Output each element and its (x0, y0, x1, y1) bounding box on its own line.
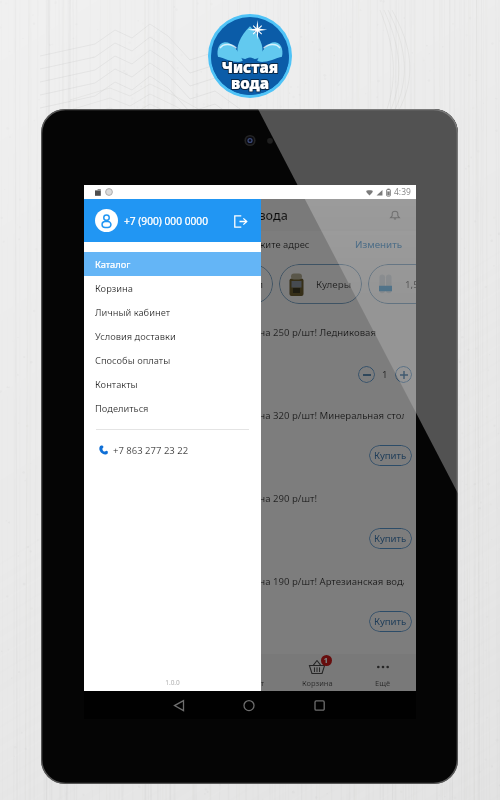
staticText: Кулеры (316, 278, 352, 291)
staticText: Личный кабинет (95, 306, 170, 319)
button[interactable]: Поделиться (84, 396, 261, 420)
staticText: Доставка по указанному адрес. Укажите ад… (97, 238, 355, 251)
staticText: Вода питьевая бутилированная 19 л. Цена … (84, 575, 404, 588)
staticText: вода (212, 72, 289, 92)
button[interactable]: Notifications (384, 204, 406, 226)
staticText: Чистая (211, 56, 289, 76)
button[interactable]: +7 863 277 23 22 (84, 430, 261, 470)
button[interactable]: Каталог (84, 252, 261, 276)
staticText: вода (211, 73, 289, 93)
button[interactable]: Купить (369, 445, 412, 466)
staticText: +7 863 277 23 22 (113, 444, 189, 457)
button[interactable]: Купить (369, 528, 412, 549)
staticText: Вода питьевая бутилированная 19 л. Цена … (84, 409, 404, 422)
button[interactable]: 1,5л (368, 264, 416, 304)
staticText: Купить (374, 449, 407, 462)
button[interactable]: 5л (144, 264, 203, 304)
staticText: 1 (382, 368, 388, 381)
button[interactable]: Личный кабинет (84, 300, 261, 324)
staticText: вода (211, 72, 289, 92)
button[interactable]: Decrease quantity (358, 366, 375, 383)
button[interactable]: Корзина (84, 276, 261, 300)
staticText: Чистая (212, 57, 289, 77)
staticText: Чистая вода (212, 207, 288, 224)
staticText: Чистая (212, 58, 289, 78)
button[interactable]: 1 (284, 654, 350, 691)
button[interactable]: Акции (151, 654, 218, 691)
staticText: 4:39 (394, 186, 411, 198)
staticText: Контакты (95, 378, 138, 391)
staticText: +7 (900) 000 0000 (124, 214, 208, 228)
staticText: вода (211, 74, 288, 94)
staticText: Чистая (211, 58, 289, 78)
staticText: вода (212, 73, 289, 93)
staticText: Изменить (355, 238, 403, 251)
staticText: Каталог (95, 258, 131, 271)
staticText: вода (211, 72, 288, 92)
staticText: Клиент (238, 678, 264, 688)
button[interactable]: Кулеры (279, 264, 362, 304)
button[interactable]: Купить (369, 611, 412, 632)
staticText: Корзина (302, 678, 333, 688)
staticText: Вода питьевая бутилированная 19 л. Цена … (84, 326, 404, 339)
staticText: 1,5л (405, 278, 416, 291)
button[interactable]: Условия доставки (84, 324, 261, 348)
button[interactable]: Ещё (350, 654, 416, 691)
staticText: Корзина (95, 282, 133, 295)
button[interactable]: Increase quantity (395, 366, 412, 383)
staticText: Ещё (375, 678, 391, 688)
staticText: 1 (324, 656, 329, 666)
staticText: Чистая (212, 56, 289, 76)
button[interactable]: Log out (232, 213, 248, 229)
staticText: Чистая (211, 57, 289, 77)
staticText: Чистая (211, 57, 288, 77)
button[interactable]: 19л (209, 264, 273, 304)
staticText: Вода питьевая бутилированная 19 л. Цена … (84, 492, 404, 505)
staticText: Акции (173, 678, 196, 688)
staticText: Чистая (211, 58, 288, 78)
staticText: вода (211, 73, 288, 93)
button[interactable]: Изменить (355, 238, 403, 251)
button[interactable]: Клиент (218, 654, 284, 691)
staticText: Способы оплаты (95, 354, 171, 367)
staticText: Купить (374, 532, 407, 545)
staticText: Поделиться (95, 402, 149, 415)
staticText: 1.0.0 (84, 678, 261, 687)
staticText: вода (212, 74, 289, 94)
button[interactable]: Контакты (84, 372, 261, 396)
button[interactable]: Способы оплаты (84, 348, 261, 372)
staticText: вода (211, 74, 289, 94)
staticText: 19л (246, 278, 263, 291)
staticText: Чистая (211, 56, 288, 76)
staticText: Купить (374, 615, 407, 628)
staticText: Условия доставки (95, 330, 176, 343)
